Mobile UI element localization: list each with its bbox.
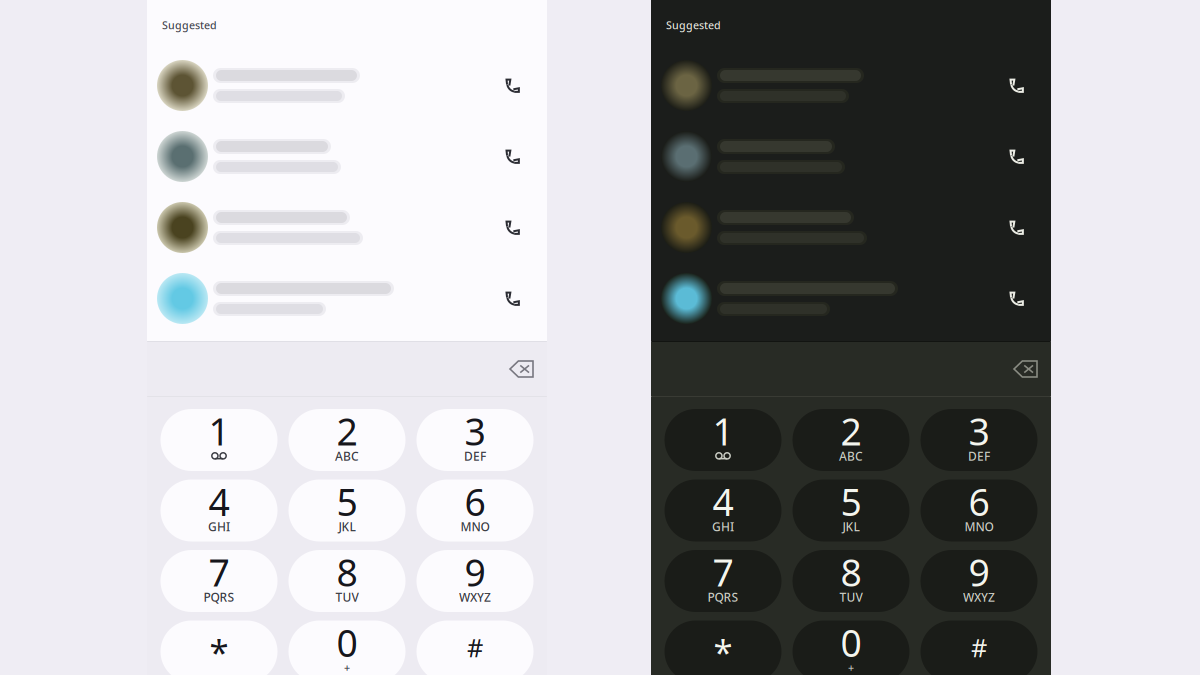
staticText: TUV	[335, 589, 358, 605]
button[interactable]	[147, 263, 547, 334]
staticText: 9	[968, 547, 989, 597]
button[interactable]: 7	[664, 550, 781, 612]
staticText: 6	[968, 477, 989, 526]
staticText: 9	[464, 547, 485, 597]
staticText: *	[713, 628, 732, 674]
staticText: 8	[840, 547, 861, 597]
staticText: Suggested	[162, 18, 217, 32]
staticText: #	[971, 631, 987, 664]
staticText: #	[467, 631, 483, 664]
staticText: 6	[464, 477, 485, 526]
staticText: *	[209, 628, 228, 674]
button[interactable]: 0	[792, 620, 909, 675]
button[interactable]: 8	[288, 550, 405, 612]
staticText: ABC	[839, 448, 863, 464]
staticText: GHI	[208, 518, 230, 534]
button[interactable]	[651, 263, 1051, 334]
staticText: 3	[968, 406, 989, 456]
staticText: 7	[712, 547, 733, 597]
button[interactable]: 6	[920, 479, 1037, 541]
button[interactable]	[147, 50, 547, 121]
button[interactable]: 4	[664, 479, 781, 541]
button[interactable]: Delete	[1000, 348, 1051, 390]
staticText: 4	[712, 477, 733, 526]
staticText: 1	[712, 406, 733, 456]
staticText: +	[344, 660, 350, 675]
staticText: Suggested	[666, 18, 721, 32]
button[interactable]	[147, 192, 547, 263]
button[interactable]: 6	[416, 479, 533, 541]
staticText: 3	[464, 406, 485, 456]
staticText: 2	[336, 406, 357, 456]
button[interactable]: *	[160, 620, 277, 675]
button[interactable]	[651, 50, 1051, 121]
button[interactable]: 2	[792, 409, 909, 471]
button[interactable]: 8	[792, 550, 909, 612]
button[interactable]: Delete	[496, 348, 547, 390]
button[interactable]: 5	[792, 479, 909, 541]
button[interactable]: 3	[416, 409, 533, 471]
button[interactable]: *	[664, 620, 781, 675]
button[interactable]: 2	[288, 409, 405, 471]
button[interactable]: 1	[160, 409, 277, 471]
staticText: 0	[840, 618, 861, 667]
button[interactable]: 9	[920, 550, 1037, 612]
staticText: +	[848, 660, 854, 675]
button[interactable]	[651, 192, 1051, 263]
staticText: TUV	[839, 589, 862, 605]
button[interactable]	[147, 121, 547, 192]
button[interactable]: 3	[920, 409, 1037, 471]
staticText: ABC	[335, 448, 359, 464]
staticText: 8	[336, 547, 357, 597]
button[interactable]: 5	[288, 479, 405, 541]
staticText: WXYZ	[459, 589, 491, 605]
staticText: DEF	[464, 448, 486, 464]
staticText: 5	[840, 477, 861, 526]
staticText: DEF	[968, 448, 990, 464]
staticText: 0	[336, 618, 357, 667]
button[interactable]: #	[920, 620, 1037, 675]
staticText: 7	[208, 547, 229, 597]
staticText: PQRS	[707, 589, 738, 605]
staticText: WXYZ	[963, 589, 995, 605]
button[interactable]: 1	[664, 409, 781, 471]
staticText: GHI	[712, 518, 734, 534]
button[interactable]	[651, 121, 1051, 192]
button[interactable]: 7	[160, 550, 277, 612]
staticText: JKL	[842, 518, 859, 534]
staticText: PQRS	[203, 589, 234, 605]
button[interactable]: #	[416, 620, 533, 675]
staticText: 1	[208, 406, 229, 456]
button[interactable]: 4	[160, 479, 277, 541]
button[interactable]: 0	[288, 620, 405, 675]
staticText: 4	[208, 477, 229, 526]
staticText: MNO	[964, 518, 993, 534]
staticText: 5	[336, 477, 357, 526]
staticText: 2	[840, 406, 861, 456]
staticText: MNO	[460, 518, 489, 534]
staticText: JKL	[338, 518, 355, 534]
button[interactable]: 9	[416, 550, 533, 612]
